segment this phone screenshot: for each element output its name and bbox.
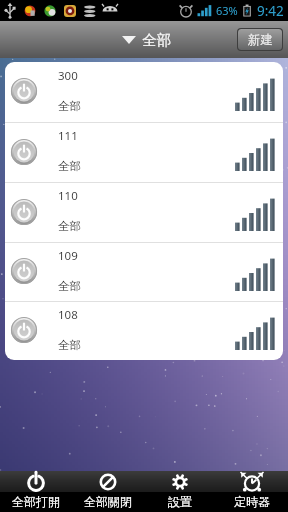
staticText: 定時器 bbox=[234, 494, 270, 509]
button[interactable]: 新建 bbox=[237, 28, 283, 51]
button[interactable]: Turn all off bbox=[72, 471, 144, 512]
staticText: 63% bbox=[216, 3, 238, 18]
button[interactable]: 全部 bbox=[117, 27, 176, 53]
staticText: 全部打開 bbox=[12, 494, 60, 509]
button[interactable]: Timer bbox=[216, 471, 288, 512]
staticText: 111 bbox=[58, 128, 78, 144]
button[interactable]: Turn all on bbox=[0, 471, 72, 512]
button[interactable]: Toggle alarm bbox=[5, 123, 283, 182]
staticText: 全部 bbox=[58, 99, 81, 113]
other: Toggle alarm bbox=[11, 258, 37, 284]
other: Toggle alarm bbox=[11, 78, 37, 104]
other: Toggle alarm bbox=[11, 199, 37, 225]
staticText: 全部關閉 bbox=[84, 494, 132, 509]
button[interactable]: Toggle alarm bbox=[5, 183, 283, 242]
staticText: 全部 bbox=[58, 159, 81, 173]
staticText: 109 bbox=[58, 248, 78, 264]
button[interactable]: Toggle alarm bbox=[5, 302, 283, 360]
staticText: 設置 bbox=[168, 494, 192, 509]
staticText: 108 bbox=[58, 307, 78, 323]
button[interactable]: Toggle alarm bbox=[5, 62, 283, 122]
staticText: 9:42 bbox=[257, 2, 284, 20]
staticText: 全部 bbox=[142, 31, 171, 49]
staticText: 全部 bbox=[58, 219, 81, 233]
staticText: 新建 bbox=[248, 32, 273, 48]
other: Toggle alarm bbox=[11, 317, 37, 343]
button[interactable]: Toggle alarm bbox=[5, 243, 283, 301]
button[interactable]: Settings bbox=[144, 471, 216, 512]
other: Toggle alarm bbox=[11, 139, 37, 165]
staticText: 全部 bbox=[58, 338, 81, 352]
staticText: 全部 bbox=[58, 279, 81, 293]
staticText: 110 bbox=[58, 188, 78, 204]
staticText: 300 bbox=[58, 68, 78, 84]
